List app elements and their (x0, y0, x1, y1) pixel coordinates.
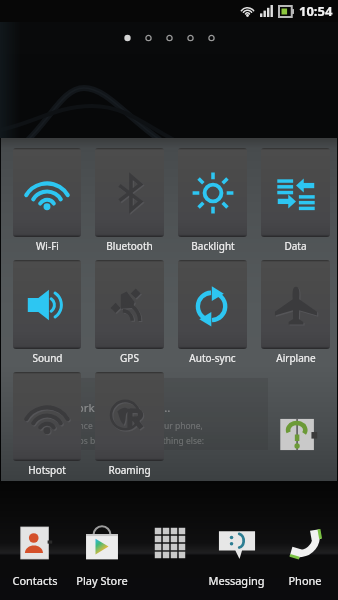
staticText: Sound (32, 351, 63, 365)
staticText: Play Store (76, 573, 128, 588)
button[interactable]: HELP (20, 378, 268, 450)
staticText: Wi-Fi (36, 239, 59, 253)
button[interactable]: Airplane (254, 250, 337, 362)
staticText: Hotspot (28, 463, 66, 477)
staticText: Data (284, 239, 307, 253)
staticText: If you experience problems with your pho… (24, 420, 203, 432)
staticText: GPS (120, 351, 139, 365)
staticText: None is working as expec... (24, 400, 171, 416)
button[interactable]: Phone (271, 519, 338, 600)
staticText: Phone (288, 573, 322, 588)
button[interactable]: Sound (6, 250, 88, 362)
button[interactable]: Auto-sync (171, 250, 254, 362)
button[interactable]: Contacts (1, 519, 68, 600)
staticText: Contacts (12, 573, 58, 588)
button[interactable]: Data (254, 138, 337, 250)
staticText: Bluetooth (106, 239, 153, 253)
staticText: Messaging (208, 573, 265, 588)
button[interactable]: Bluetooth (88, 138, 171, 250)
button[interactable]: All apps (136, 519, 203, 600)
button[interactable]: GPS (88, 250, 171, 362)
button[interactable]: Roaming (88, 362, 171, 474)
staticText: 10:54 (299, 2, 333, 20)
button[interactable]: Help (277, 414, 318, 455)
button[interactable]: Wi-Fi (6, 138, 88, 250)
button[interactable]: Backlight (171, 138, 254, 250)
staticText: Roaming (108, 463, 151, 477)
button[interactable]: Messaging (203, 519, 270, 600)
staticText: check these tips before you try anything… (24, 435, 205, 447)
staticText: Auto-sync (189, 351, 236, 365)
button[interactable]: Play Store (68, 519, 135, 600)
staticText: Airplane (276, 351, 316, 365)
button[interactable]: Hotspot (6, 362, 88, 474)
staticText: Backlight (191, 239, 235, 253)
